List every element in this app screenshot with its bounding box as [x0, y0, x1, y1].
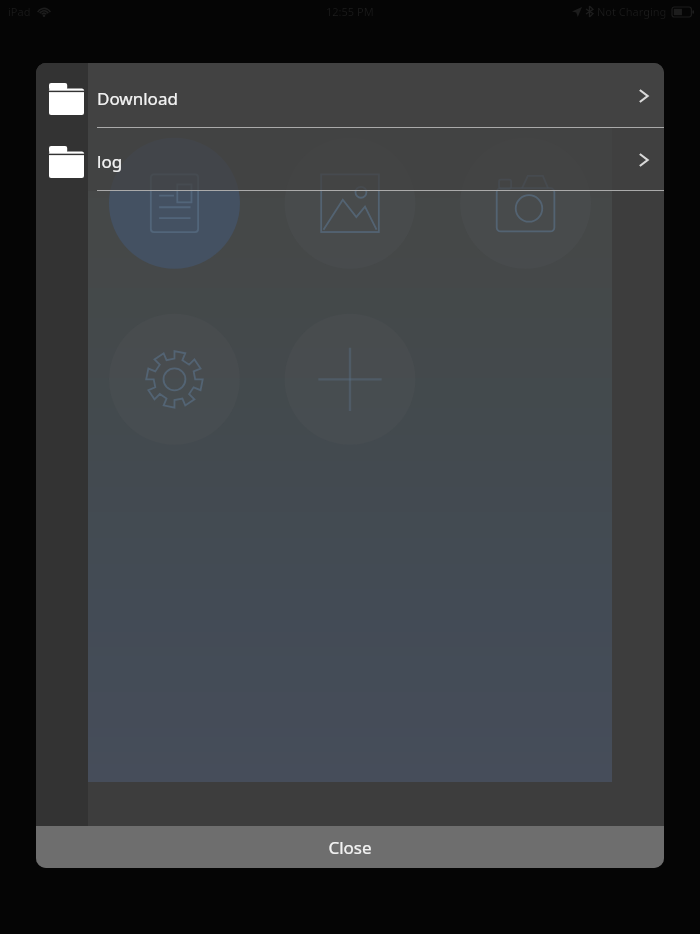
- staticText: Not Charging: [597, 4, 667, 19]
- button[interactable]: log: [36, 128, 664, 191]
- staticText: iPad: [8, 4, 31, 19]
- other: Open Download: [638, 86, 650, 106]
- button[interactable]: Download: [36, 63, 664, 128]
- other: Open log: [638, 150, 650, 170]
- staticText: Download: [97, 87, 178, 110]
- staticText: log: [97, 150, 123, 173]
- staticText: 12:55 PM: [326, 4, 374, 19]
- staticText: Close: [328, 836, 372, 859]
- button[interactable]: Close: [36, 826, 664, 868]
